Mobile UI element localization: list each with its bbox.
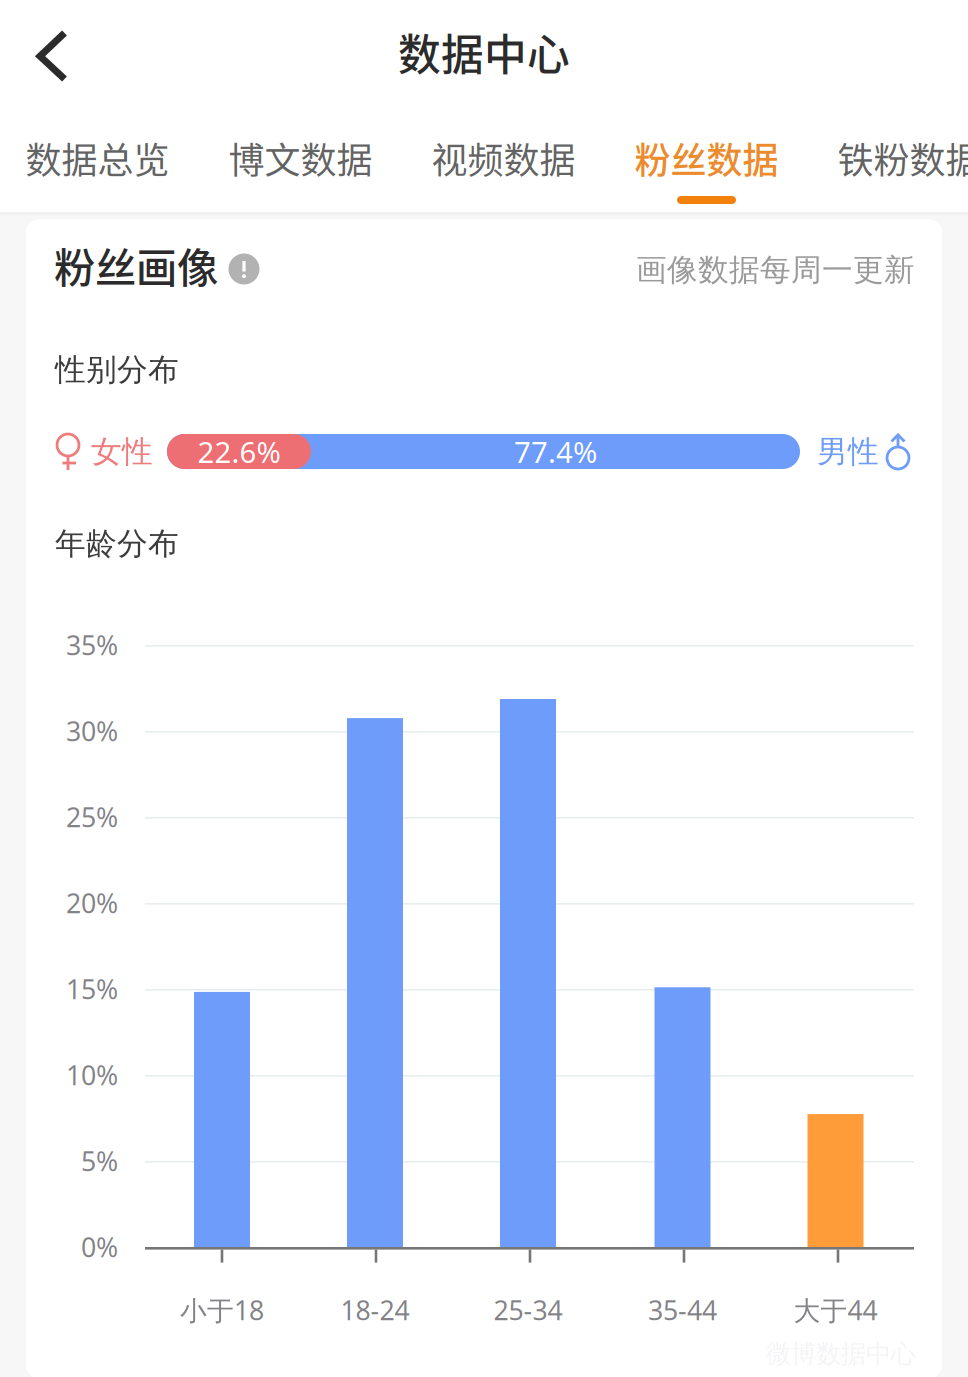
staticText: 女性 bbox=[91, 433, 153, 471]
staticText: 22.6% bbox=[197, 432, 280, 471]
button[interactable]: 铁粉数据 bbox=[808, 112, 968, 212]
staticText: 博文数据 bbox=[228, 132, 372, 184]
staticText: 20% bbox=[66, 885, 118, 921]
staticText: 小于18 bbox=[180, 1292, 264, 1328]
staticText: 大于44 bbox=[793, 1292, 877, 1328]
staticText: 77.4% bbox=[514, 432, 597, 471]
staticText: 视频数据 bbox=[431, 132, 575, 184]
staticText: 画像数据每周一更新 bbox=[636, 251, 915, 289]
staticText: 数据中心 bbox=[398, 21, 570, 83]
staticText: 30% bbox=[66, 713, 118, 749]
staticText: 微博数据中心 bbox=[766, 1338, 916, 1369]
staticText: 18-24 bbox=[340, 1292, 409, 1328]
staticText: 5% bbox=[81, 1143, 118, 1179]
button[interactable]: Back bbox=[6, 6, 98, 106]
staticText: 男性 bbox=[817, 433, 879, 471]
staticText: 粉丝画像 bbox=[54, 235, 218, 295]
staticText: 25% bbox=[66, 799, 118, 835]
staticText: 15% bbox=[66, 971, 118, 1007]
button[interactable]: 数据总览 bbox=[0, 112, 199, 212]
staticText: 铁粉数据 bbox=[837, 132, 968, 184]
staticText: 35-44 bbox=[648, 1292, 717, 1328]
staticText: 10% bbox=[66, 1057, 118, 1093]
button[interactable]: 视频数据 bbox=[402, 112, 605, 212]
staticText: 性别分布 bbox=[55, 351, 179, 389]
button[interactable]: 博文数据 bbox=[199, 112, 402, 212]
staticText: 粉丝数据 bbox=[634, 132, 778, 184]
button[interactable]: 粉丝数据 bbox=[605, 112, 808, 212]
staticText: 年龄分布 bbox=[55, 525, 179, 563]
button[interactable]: 关于粉丝画像 bbox=[220, 245, 268, 293]
staticText: 数据总览 bbox=[25, 132, 169, 184]
staticText: 25-34 bbox=[493, 1292, 562, 1328]
staticText: 0% bbox=[81, 1229, 118, 1265]
staticText: 35% bbox=[66, 627, 118, 663]
